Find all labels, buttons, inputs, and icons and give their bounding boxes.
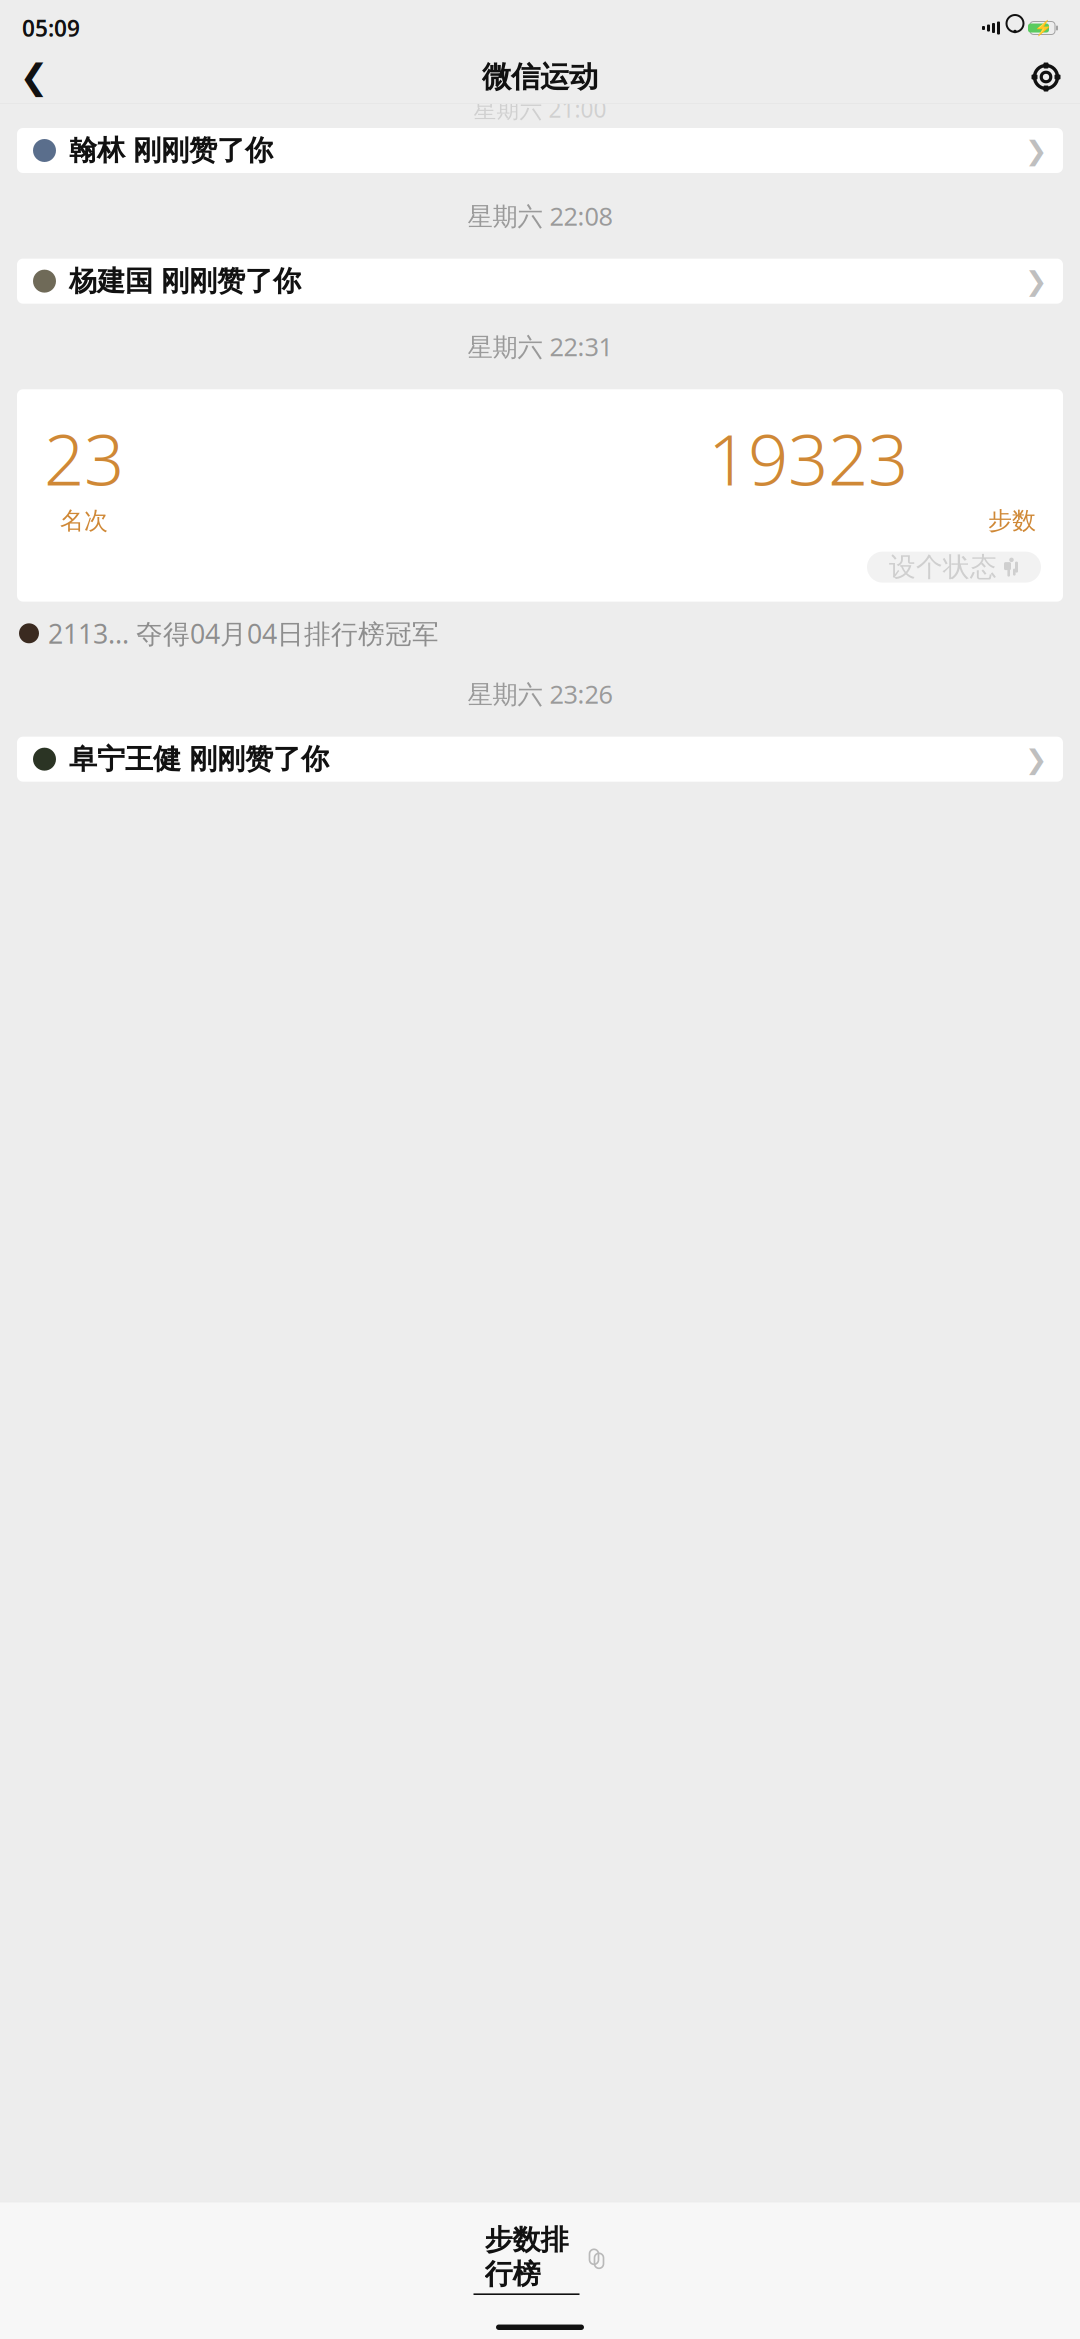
button[interactable]: Back — [8, 51, 60, 103]
staticText: 星期六 22:08 — [467, 199, 612, 233]
button[interactable]: 2113... 夺得04月04日排行榜冠军 — [0, 602, 1080, 651]
staticText: 设个状态 — [889, 551, 997, 583]
staticText: 杨建国 刚刚赞了你 — [69, 264, 301, 298]
staticText: 星期六 21:00 — [473, 94, 606, 124]
staticText: 2113... 夺得04月04日排行榜冠军 — [48, 616, 439, 651]
staticText: ⚡ — [1033, 20, 1051, 36]
staticText: 星期六 22:31 — [467, 330, 612, 363]
button[interactable]: 阜宁王健 刚刚赞了你 — [0, 737, 1080, 782]
staticText: 阜宁王健 刚刚赞了你 — [69, 742, 329, 776]
staticText: 19323 — [708, 411, 908, 505]
staticText: 步数 — [988, 506, 1036, 536]
button[interactable]: Settings — [1020, 51, 1072, 103]
staticText: 05:09 — [22, 13, 80, 43]
button[interactable]: 翰林 刚刚赞了你 — [0, 128, 1080, 173]
staticText: 23 — [44, 411, 124, 505]
staticText: ❯ — [1025, 135, 1047, 166]
staticText: 星期六 23:26 — [467, 677, 612, 711]
staticText: 名次 — [60, 506, 108, 536]
staticText: 翰林 刚刚赞了你 — [69, 133, 273, 168]
staticText: ❯ — [1025, 744, 1047, 774]
staticText: ❯ — [1025, 266, 1047, 296]
button[interactable]: 23 — [0, 389, 1080, 602]
staticText: 步数排行榜 — [484, 2223, 568, 2291]
button[interactable]: 步数排行榜 — [0, 2202, 1080, 2339]
staticText: 微信运动 — [482, 59, 598, 95]
staticText: ❮ — [19, 57, 48, 97]
button[interactable]: 杨建国 刚刚赞了你 — [0, 259, 1080, 304]
